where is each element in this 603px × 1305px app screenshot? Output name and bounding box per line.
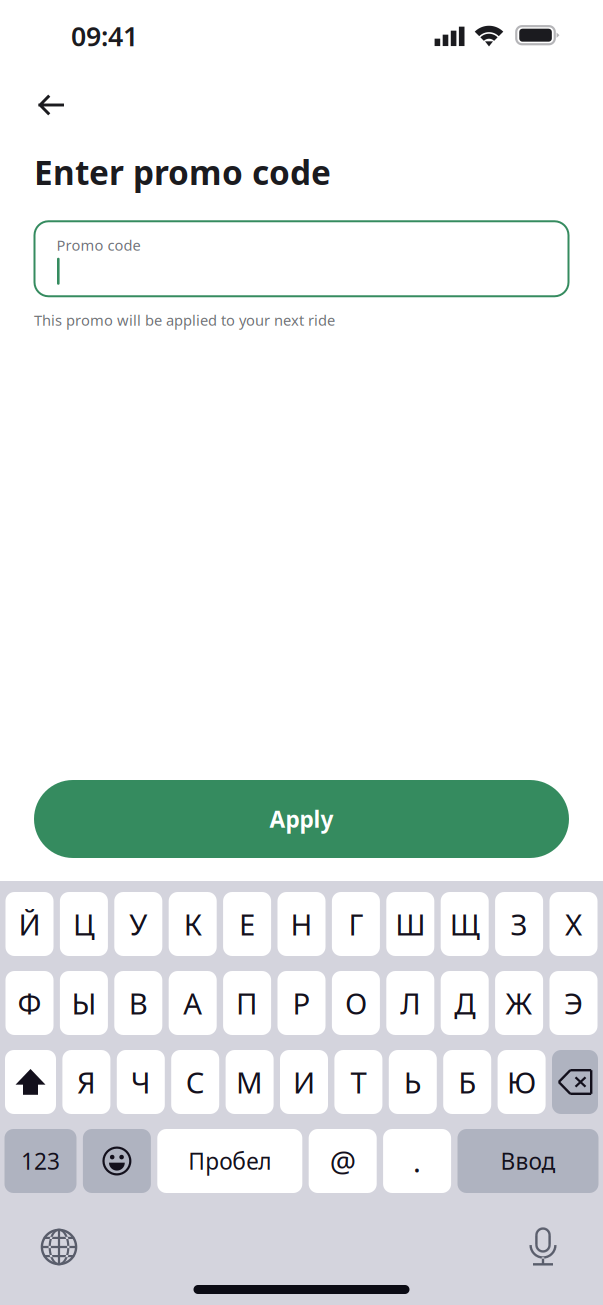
button[interactable]: Я <box>62 1050 110 1114</box>
staticText: У <box>129 904 147 943</box>
staticText: Ш <box>395 904 425 943</box>
button[interactable]: И <box>280 1050 328 1114</box>
button[interactable]: Й <box>5 892 53 956</box>
staticText: Й <box>18 904 40 943</box>
button[interactable]: Back <box>0 83 77 127</box>
staticText: Apply <box>269 804 333 834</box>
button[interactable]: 123 <box>4 1129 76 1193</box>
button[interactable]: Next keyboard <box>31 1225 87 1269</box>
staticText: Пробел <box>188 1146 271 1176</box>
button[interactable]: . <box>383 1129 451 1193</box>
button[interactable]: К <box>169 892 217 956</box>
staticText: Щ <box>450 904 480 943</box>
button[interactable]: Т <box>334 1050 382 1114</box>
button[interactable]: Emoji <box>83 1129 151 1193</box>
staticText: Е <box>239 904 255 943</box>
button[interactable]: Д <box>441 971 489 1035</box>
staticText: Л <box>400 983 420 1022</box>
staticText: . <box>413 1141 421 1180</box>
staticText: Promo code <box>56 235 140 255</box>
button[interactable]: Ы <box>60 971 108 1035</box>
staticText: З <box>511 904 528 943</box>
staticText: К <box>184 904 202 943</box>
button[interactable]: Ф <box>5 971 53 1035</box>
button[interactable]: Delete <box>552 1050 598 1114</box>
staticText: П <box>236 983 258 1022</box>
button[interactable]: Ч <box>117 1050 165 1114</box>
button[interactable]: Э <box>549 971 597 1035</box>
button[interactable]: Ц <box>60 892 108 956</box>
button[interactable]: Е <box>223 892 271 956</box>
button[interactable]: В <box>114 971 162 1035</box>
staticText: Х <box>565 904 582 943</box>
staticText: Г <box>348 904 363 943</box>
staticText: Н <box>290 904 312 943</box>
staticText: Ы <box>71 983 96 1022</box>
button[interactable]: С <box>171 1050 219 1114</box>
staticText: М <box>236 1062 263 1101</box>
button[interactable]: Apply <box>34 780 569 858</box>
staticText: Ж <box>506 983 533 1022</box>
staticText: О <box>345 983 367 1022</box>
staticText: Б <box>458 1062 476 1101</box>
button[interactable]: У <box>114 892 162 956</box>
button[interactable]: Г <box>332 892 380 956</box>
staticText: С <box>186 1062 205 1101</box>
staticText: Ф <box>17 983 41 1022</box>
button[interactable]: Ввод <box>457 1129 598 1193</box>
button[interactable]: Р <box>277 971 325 1035</box>
button[interactable]: Х <box>549 892 597 956</box>
button[interactable]: Ж <box>495 971 543 1035</box>
staticText: Ю <box>507 1062 536 1101</box>
button[interactable]: О <box>332 971 380 1035</box>
button[interactable]: Ь <box>389 1050 437 1114</box>
staticText: Ввод <box>500 1146 555 1176</box>
staticText: Ц <box>73 904 95 943</box>
button[interactable]: Пробел <box>157 1129 302 1193</box>
staticText: И <box>293 1062 315 1101</box>
button[interactable]: Ю <box>498 1050 546 1114</box>
staticText: Enter promo code <box>34 150 331 194</box>
button[interactable]: Щ <box>441 892 489 956</box>
staticText: Д <box>454 983 475 1022</box>
staticText: Т <box>350 1062 366 1101</box>
button[interactable]: Dictation <box>515 1225 571 1269</box>
staticText: @ <box>330 1141 356 1180</box>
staticText: В <box>129 983 148 1022</box>
staticText: Э <box>564 983 583 1022</box>
staticText: Ь <box>404 1062 422 1101</box>
staticText: Ч <box>131 1062 151 1101</box>
staticText: Р <box>292 983 310 1022</box>
staticText: А <box>183 983 202 1022</box>
button[interactable]: Л <box>386 971 434 1035</box>
button[interactable]: Shift <box>5 1050 56 1114</box>
button[interactable]: А <box>169 971 217 1035</box>
button[interactable]: Н <box>277 892 325 956</box>
button[interactable]: Б <box>443 1050 491 1114</box>
button[interactable]: П <box>223 971 271 1035</box>
button[interactable]: @ <box>309 1129 377 1193</box>
staticText: 09:41 <box>71 18 138 54</box>
button[interactable]: М <box>226 1050 274 1114</box>
staticText: Я <box>77 1062 96 1101</box>
button[interactable]: Ш <box>386 892 434 956</box>
button[interactable]: З <box>495 892 543 956</box>
staticText: This promo will be applied to your next … <box>34 310 335 330</box>
staticText: 123 <box>21 1146 60 1176</box>
